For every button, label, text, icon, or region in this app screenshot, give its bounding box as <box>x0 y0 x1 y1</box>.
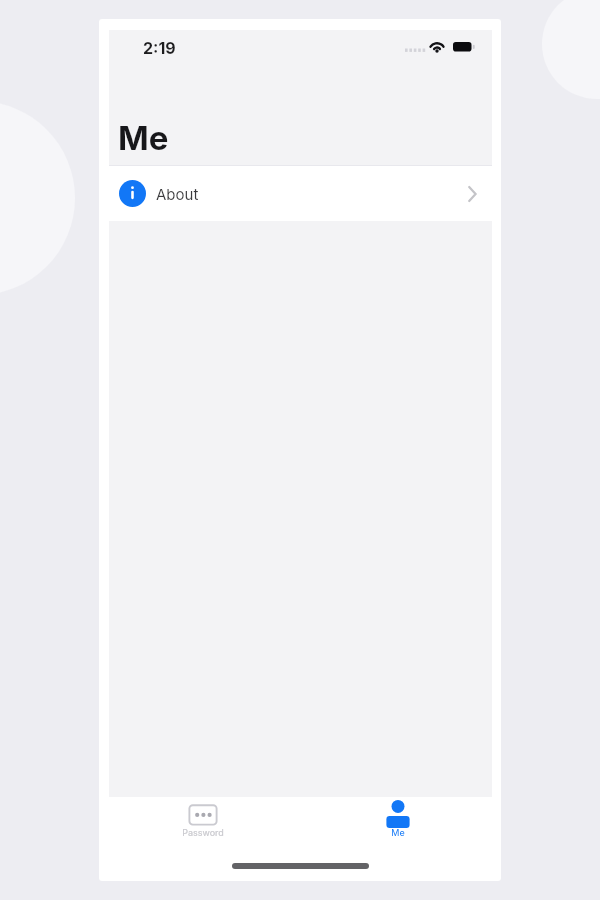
button[interactable]: About <box>109 166 492 221</box>
other: Open About <box>468 187 476 201</box>
button[interactable]: Me <box>300 797 492 840</box>
staticText: Password <box>182 827 224 837</box>
button[interactable]: Password <box>109 797 300 840</box>
staticText: Me <box>118 118 169 158</box>
staticText: Me <box>391 827 405 837</box>
staticText: About <box>156 185 199 203</box>
staticText: 2:19 <box>143 38 176 57</box>
